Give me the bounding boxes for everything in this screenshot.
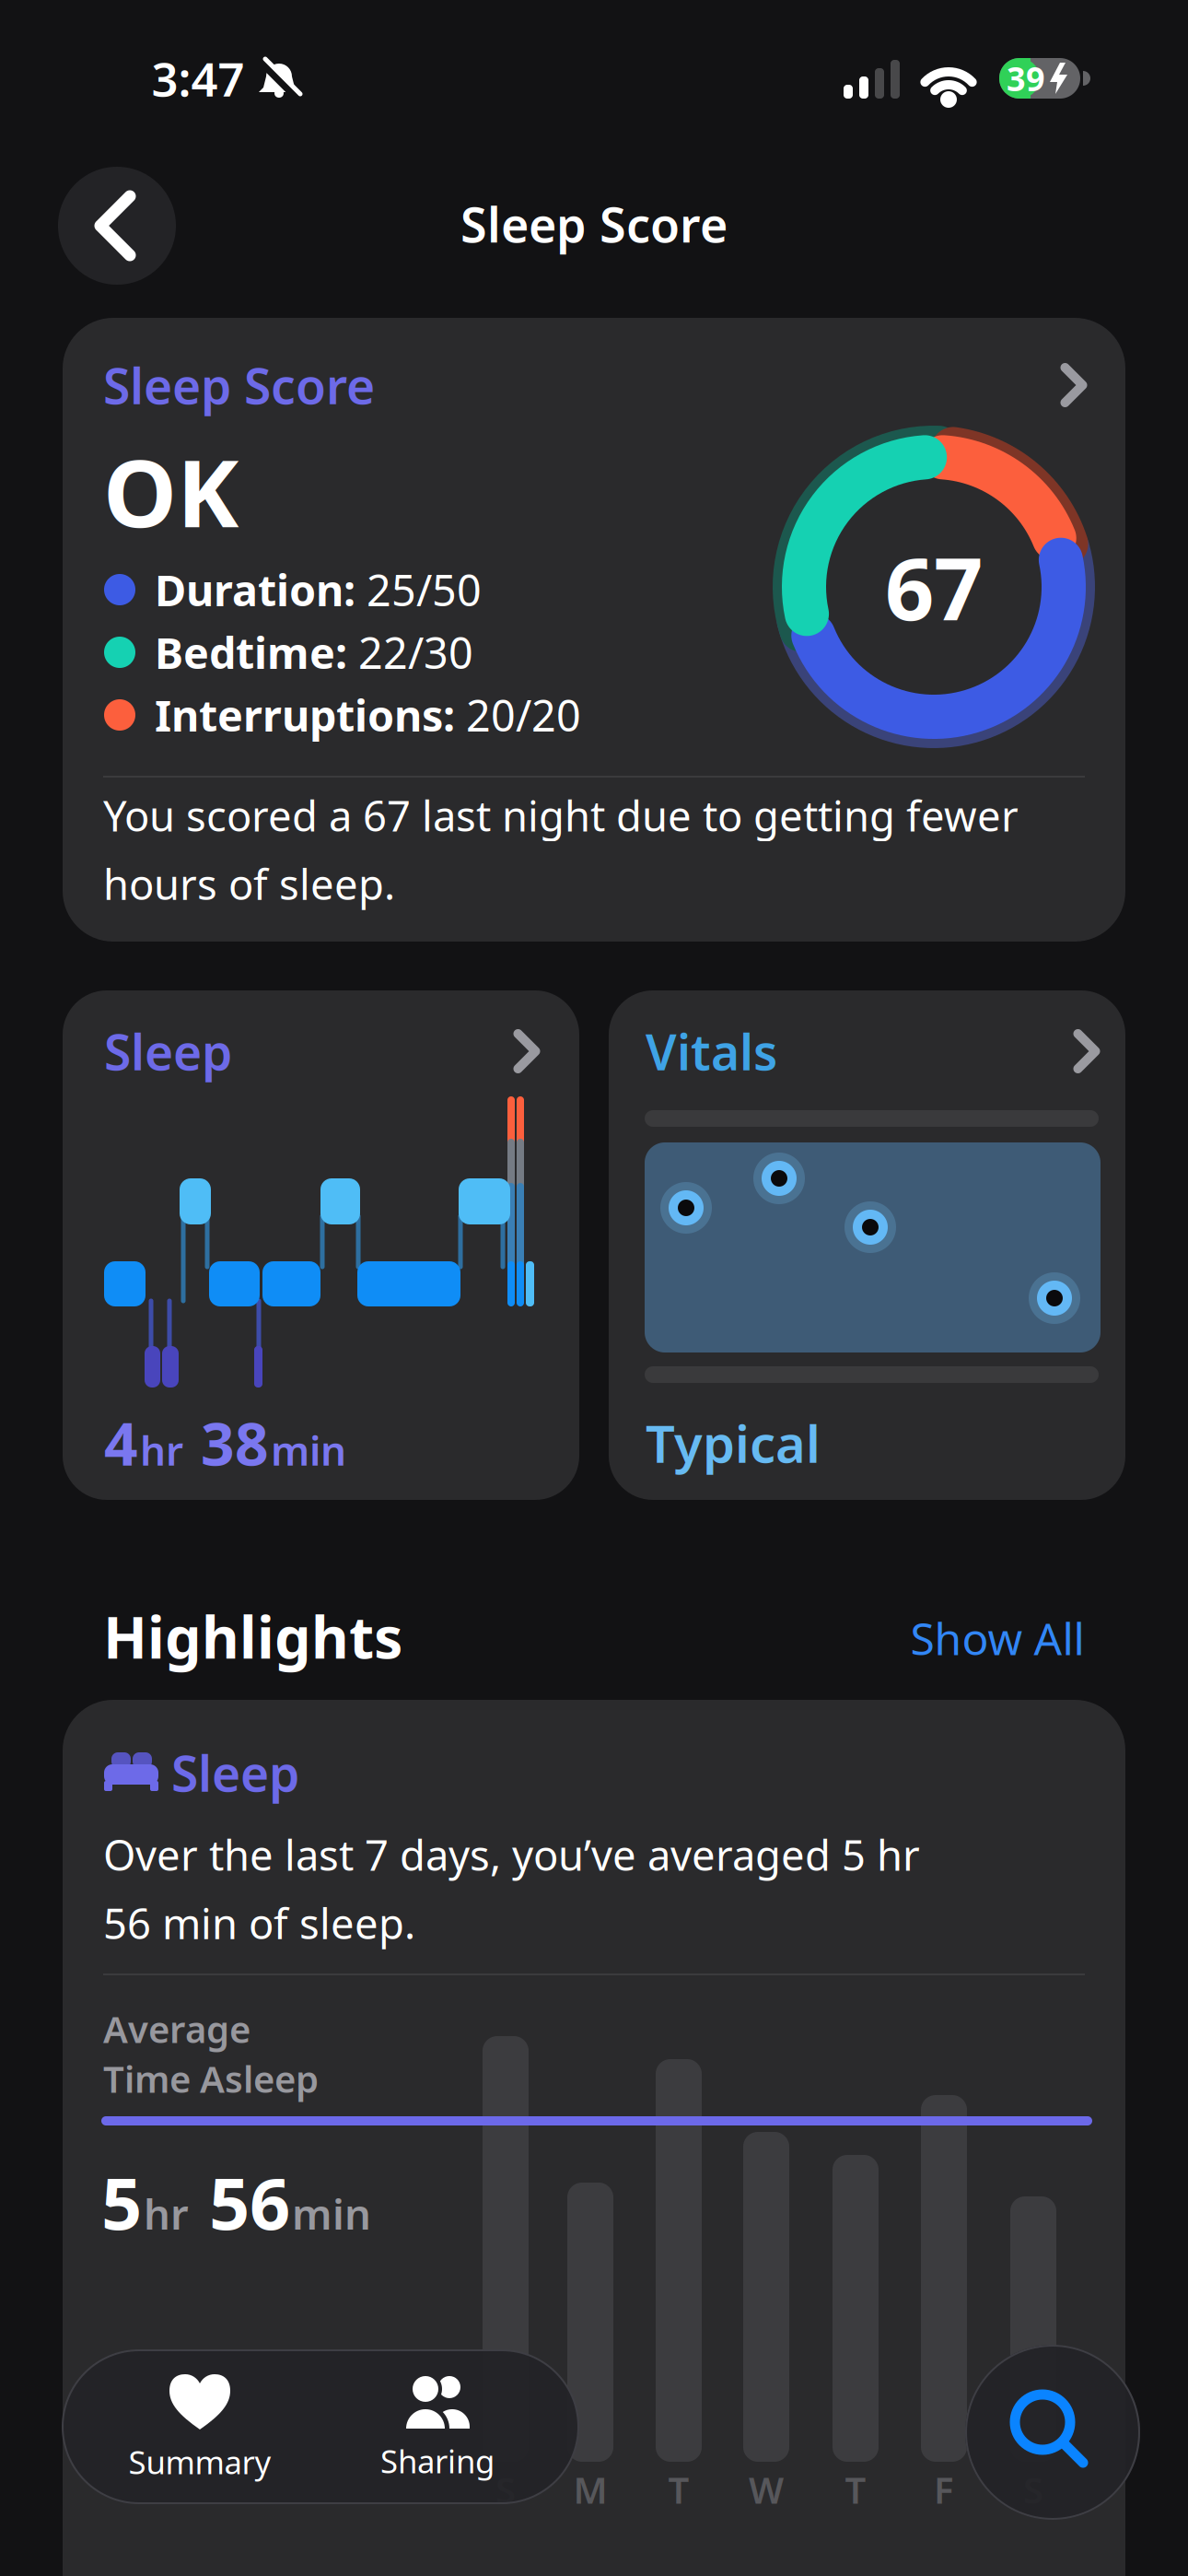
staticText: Bedtime: xyxy=(155,624,347,681)
staticText: Show All xyxy=(910,1609,1084,1667)
staticText: Over the last 7 days, you’ve averaged 5 … xyxy=(103,1827,920,1951)
staticText: Sharing xyxy=(380,2440,495,2482)
staticText: 20/20 xyxy=(466,686,581,744)
button[interactable]: Vitals xyxy=(609,990,1125,1500)
button[interactable]: Summary xyxy=(80,2359,320,2498)
button[interactable]: Sleep xyxy=(63,990,579,1500)
staticText: You scored a 67 last night due to gettin… xyxy=(103,788,1019,911)
staticText: min xyxy=(292,2186,371,2241)
button[interactable]: Sleep xyxy=(63,1700,1125,2576)
staticText: Summary xyxy=(128,2441,271,2483)
button[interactable]: Show All xyxy=(910,1609,1084,1667)
staticText: Sleep xyxy=(104,1019,232,1084)
staticText: OK xyxy=(103,429,239,553)
staticText: 67 xyxy=(885,530,983,644)
staticText: Average xyxy=(103,2004,250,2053)
staticText: T xyxy=(845,2465,866,2514)
button[interactable]: Back xyxy=(58,167,176,285)
staticText: 4 xyxy=(104,1404,138,1482)
staticText: Vitals xyxy=(646,1019,777,1084)
staticText: 22/30 xyxy=(358,624,473,681)
staticText: Time Asleep xyxy=(103,2054,319,2103)
staticText: Highlights xyxy=(103,1598,402,1675)
staticText: F xyxy=(934,2465,954,2514)
staticText: Sleep Score xyxy=(103,352,375,418)
staticText: hr xyxy=(144,2186,189,2241)
staticText: 38 xyxy=(185,1404,269,1482)
button[interactable]: Search xyxy=(965,2345,1140,2520)
staticText: Sleep xyxy=(171,1740,299,1805)
staticText: 25/50 xyxy=(367,561,482,618)
staticText: W xyxy=(749,2465,784,2514)
staticText: 5 xyxy=(101,2155,142,2249)
staticText: 3:47 xyxy=(151,47,245,109)
staticText: Interruptions: xyxy=(155,686,455,744)
staticText: M xyxy=(573,2465,607,2514)
staticText: 56 xyxy=(191,2155,290,2249)
staticText: hr xyxy=(140,1423,183,1477)
staticText: Duration: xyxy=(155,561,355,618)
staticText: Typical xyxy=(646,1409,821,1477)
staticText: T xyxy=(668,2465,689,2514)
staticText: 39 xyxy=(1007,56,1045,100)
staticText: min xyxy=(271,1423,346,1477)
staticText: Sleep Score xyxy=(460,192,728,256)
button[interactable]: Sharing xyxy=(318,2359,557,2498)
staticText: S xyxy=(495,2465,516,2514)
button[interactable]: Sleep Score xyxy=(63,318,1125,942)
